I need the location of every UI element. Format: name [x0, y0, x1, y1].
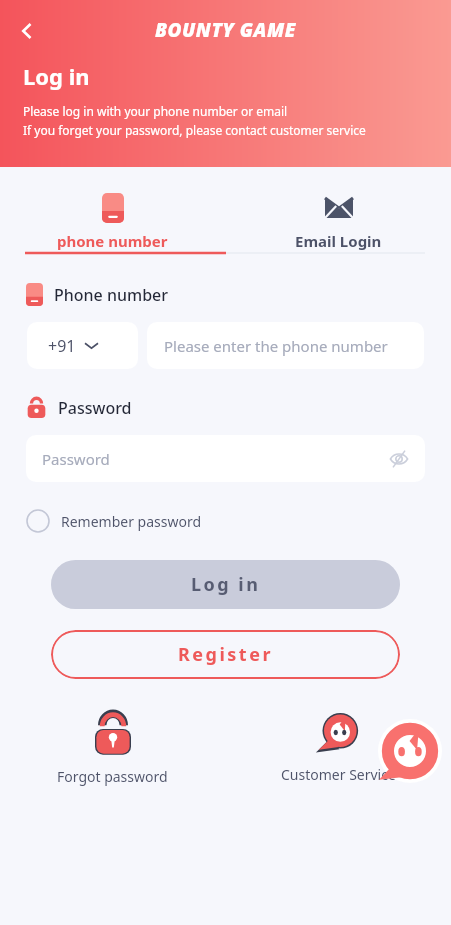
button[interactable]: Forgot password [0, 711, 225, 803]
button[interactable]: Log in [51, 560, 400, 609]
staticText: Log in [191, 572, 261, 597]
staticText: BOUNTY GAME [155, 17, 296, 43]
staticText: phone number [57, 231, 168, 251]
staticText: Forgot password [57, 767, 168, 786]
button[interactable]: Password [26, 396, 451, 419]
staticText: Email Login [295, 231, 382, 251]
button[interactable]: Phone number [26, 283, 451, 306]
staticText: Please enter the phone number [164, 336, 388, 356]
staticText: Please log in with your phone number or … [23, 103, 288, 119]
button[interactable]: phone number [0, 179, 225, 251]
button[interactable]: Customer service chat [378, 719, 442, 783]
button[interactable]: +91 [27, 322, 138, 369]
button[interactable]: Customer Service [225, 711, 451, 803]
staticText: Phone number [54, 284, 169, 306]
button[interactable]: Email Login [225, 179, 451, 251]
staticText: Register [178, 642, 273, 667]
button[interactable]: Please enter the phone number [147, 322, 424, 369]
staticText: +91 [48, 335, 76, 357]
staticText: Password [42, 449, 110, 469]
button[interactable]: Back [6, 10, 48, 52]
staticText: Password [58, 397, 132, 419]
button[interactable]: Show password [384, 444, 414, 474]
button[interactable]: Register [51, 630, 400, 679]
button[interactable]: Remember password [26, 506, 202, 536]
staticText: Log in [23, 61, 90, 91]
staticText: If you forget your password, please cont… [23, 122, 366, 138]
staticText: Remember password [61, 512, 202, 531]
button[interactable]: Password [26, 435, 425, 482]
staticText: Customer Service [281, 765, 396, 784]
